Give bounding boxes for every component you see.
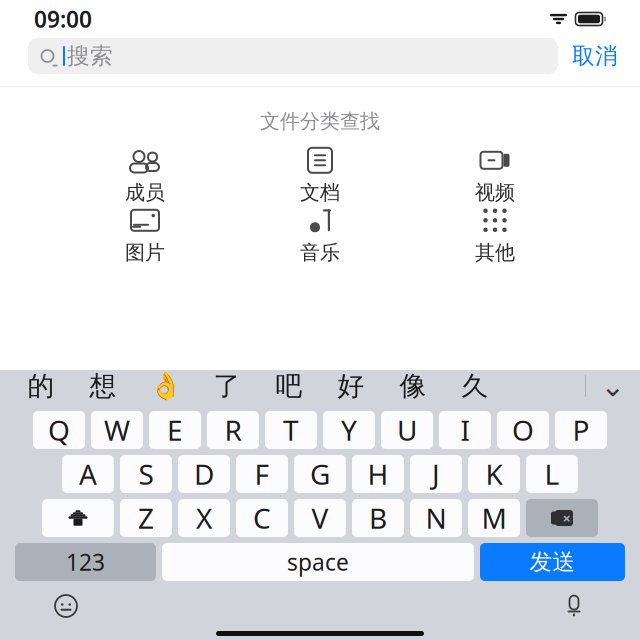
staticText: Y (341, 411, 357, 449)
staticText: 好 (337, 370, 364, 402)
staticText: 👌 (148, 371, 181, 401)
staticText: T (283, 411, 299, 449)
button[interactable]: T (265, 411, 317, 449)
button[interactable]: 文档 (260, 148, 380, 204)
button[interactable]: 👌 (134, 367, 196, 405)
button[interactable]: S (120, 455, 172, 493)
staticText: P (572, 411, 589, 449)
button[interactable]: A (62, 455, 114, 493)
staticText: H (367, 455, 388, 493)
staticText: W (104, 411, 130, 449)
button[interactable]: J (410, 455, 462, 493)
staticText: F (254, 455, 269, 493)
staticText: 搜索 (67, 42, 113, 70)
staticText: 图片 (125, 240, 165, 265)
button[interactable]: K (468, 455, 520, 493)
button[interactable]: M (468, 499, 520, 537)
staticText: J (432, 455, 440, 493)
staticText: U (397, 411, 417, 449)
button[interactable]: 像 (382, 367, 444, 405)
button[interactable]: 图片 (85, 208, 205, 264)
button[interactable]: E (149, 411, 201, 449)
staticText: D (194, 455, 214, 493)
staticText: 文档 (300, 180, 340, 205)
button[interactable]: 取消 (572, 42, 618, 70)
staticText: × (562, 508, 570, 528)
button[interactable]: D (178, 455, 230, 493)
staticText: X (196, 499, 212, 537)
button[interactable]: 想 (72, 367, 134, 405)
button[interactable]: H (352, 455, 404, 493)
button[interactable]: Delete (526, 499, 598, 537)
button[interactable]: 的 (10, 367, 72, 405)
button[interactable]: 吧 (258, 367, 320, 405)
staticText: 成员 (125, 180, 165, 205)
button[interactable]: 123 (15, 543, 156, 581)
button[interactable]: R (207, 411, 259, 449)
button[interactable]: X (178, 499, 230, 537)
staticText: 想 (89, 370, 116, 402)
button[interactable]: V (294, 499, 346, 537)
button[interactable]: 其他 (435, 208, 555, 264)
staticText: 久 (461, 370, 488, 402)
staticText: K (485, 455, 502, 493)
staticText: E (167, 411, 183, 449)
staticText: 09:00 (34, 4, 92, 34)
staticText: space (287, 547, 349, 577)
button[interactable]: 音乐 (260, 208, 380, 264)
staticText: ⌄ (600, 369, 625, 403)
staticText: 音乐 (300, 240, 340, 265)
staticText: 视频 (475, 180, 515, 205)
staticText: C (253, 499, 271, 537)
button[interactable]: Y (323, 411, 375, 449)
button[interactable]: space (162, 543, 474, 581)
button[interactable]: O (497, 411, 549, 449)
button[interactable]: C (236, 499, 288, 537)
button[interactable]: U (381, 411, 433, 449)
staticText: A (79, 455, 97, 493)
button[interactable]: 收起候选 (586, 367, 640, 405)
button[interactable]: N (410, 499, 462, 537)
button[interactable]: F (236, 455, 288, 493)
button[interactable]: Emoji (44, 589, 88, 623)
staticText: 像 (399, 370, 426, 402)
button[interactable]: 成员 (85, 148, 205, 204)
button[interactable]: Z (120, 499, 172, 537)
button[interactable]: 发送 (480, 543, 625, 581)
button[interactable]: L (526, 455, 578, 493)
staticText: Q (48, 411, 70, 449)
button[interactable]: B (352, 499, 404, 537)
staticText: M (481, 499, 506, 537)
staticText: 吧 (275, 370, 302, 402)
button[interactable]: P (555, 411, 607, 449)
staticText: 发送 (529, 548, 575, 576)
staticText: 的 (27, 370, 54, 402)
staticText: O (512, 411, 534, 449)
button[interactable]: Q (33, 411, 85, 449)
staticText: 其他 (475, 240, 515, 265)
staticText: N (425, 499, 446, 537)
button[interactable]: W (91, 411, 143, 449)
staticText: I (460, 411, 469, 449)
staticText: S (138, 455, 153, 493)
staticText: G (310, 455, 330, 493)
staticText: Z (138, 499, 154, 537)
staticText: 文件分类查找 (260, 109, 380, 134)
button[interactable]: Dictation (552, 589, 596, 623)
button[interactable]: I (439, 411, 491, 449)
staticText: 了 (213, 370, 240, 402)
button[interactable]: 久 (444, 367, 506, 405)
button[interactable]: 了 (196, 367, 258, 405)
staticText: 123 (66, 547, 105, 577)
button[interactable]: G (294, 455, 346, 493)
button[interactable]: 好 (320, 367, 382, 405)
staticText: 取消 (572, 42, 618, 70)
staticText: R (224, 411, 241, 449)
button[interactable]: 视频 (435, 148, 555, 204)
staticText: V (311, 499, 328, 537)
staticText: L (544, 455, 559, 493)
staticText: B (369, 499, 387, 537)
button[interactable]: Shift (42, 499, 114, 537)
